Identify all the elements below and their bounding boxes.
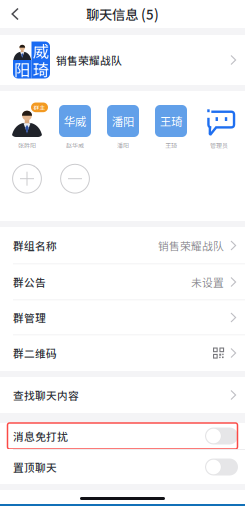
button[interactable]: Remove member bbox=[60, 164, 90, 194]
staticText: 群公告 bbox=[13, 274, 46, 290]
button[interactable]: 群公告 bbox=[0, 264, 245, 299]
staticText: 查找聊天内容 bbox=[13, 387, 79, 403]
staticText: 琦 bbox=[33, 57, 49, 81]
button[interactable]: 群二维码 bbox=[0, 335, 245, 370]
staticText: 消息免打扰 bbox=[13, 428, 68, 444]
staticText: 聊天信息 (5) bbox=[86, 4, 159, 24]
button[interactable]: 王琦 bbox=[155, 105, 187, 150]
staticText: 未设置 bbox=[191, 274, 224, 290]
button[interactable]: Add member bbox=[12, 164, 42, 194]
staticText: 销售荣耀战队 bbox=[56, 52, 122, 68]
button[interactable]: 群主 bbox=[11, 105, 43, 150]
button[interactable]: 华威 bbox=[59, 105, 91, 150]
button[interactable]: 群管理 bbox=[0, 300, 245, 334]
staticText: 销售荣耀战队 bbox=[158, 238, 224, 253]
staticText: 潘阳 bbox=[112, 113, 134, 129]
staticText: 群主 bbox=[33, 103, 45, 111]
staticText: 王琦 bbox=[165, 141, 177, 150]
button[interactable]: 管理员 bbox=[203, 105, 235, 150]
button[interactable]: 查找聊天内容 bbox=[0, 377, 245, 413]
staticText: 赵华威 bbox=[66, 141, 84, 150]
staticText: 群二维码 bbox=[13, 345, 57, 361]
staticText: 群组名称 bbox=[13, 238, 57, 253]
staticText: 王琦 bbox=[160, 113, 182, 129]
button[interactable]: 群组名称 bbox=[0, 227, 245, 263]
staticText: 潘阳 bbox=[117, 141, 129, 150]
button[interactable]: 潘阳 bbox=[107, 105, 139, 150]
staticText: 群管理 bbox=[13, 310, 46, 325]
button[interactable]: Back bbox=[0, 0, 30, 28]
button[interactable]: 消息免打扰 bbox=[0, 423, 245, 449]
staticText: 阳 bbox=[14, 57, 30, 81]
button[interactable]: 置顶聊天 bbox=[0, 450, 245, 484]
staticText: 华威 bbox=[64, 113, 86, 129]
button[interactable]: 威 bbox=[0, 35, 245, 85]
staticText: 置顶聊天 bbox=[13, 459, 57, 475]
staticText: 张胜阳 bbox=[18, 141, 36, 150]
staticText: 威 bbox=[33, 39, 49, 63]
staticText: 管理员 bbox=[210, 141, 228, 150]
